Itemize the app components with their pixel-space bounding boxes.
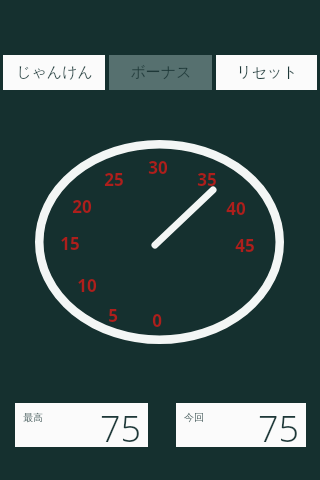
staticText: 0 [152, 309, 162, 331]
button[interactable]: Speed gauge [30, 133, 292, 353]
staticText: 今回 [184, 411, 204, 424]
staticText: 最高 [23, 411, 43, 424]
staticText: 10 [77, 274, 97, 296]
staticText: 20 [72, 195, 92, 217]
staticText: リセット [236, 63, 298, 82]
staticText: 5 [108, 304, 118, 326]
staticText: じゃんけん [16, 63, 93, 82]
staticText: 40 [226, 197, 246, 219]
staticText: 25 [104, 168, 124, 190]
button[interactable]: じゃんけん [3, 55, 105, 90]
button[interactable]: ボーナス [109, 55, 212, 90]
staticText: 35 [197, 168, 217, 190]
staticText: ボーナス [130, 63, 192, 82]
button[interactable]: リセット [216, 55, 317, 90]
staticText: 75 [258, 404, 300, 448]
staticText: 75 [100, 404, 142, 448]
button[interactable]: 今回 [176, 403, 306, 447]
staticText: 45 [235, 234, 255, 256]
staticText: 15 [60, 232, 80, 254]
button[interactable]: 最高 [15, 403, 148, 447]
staticText: 30 [148, 156, 168, 178]
